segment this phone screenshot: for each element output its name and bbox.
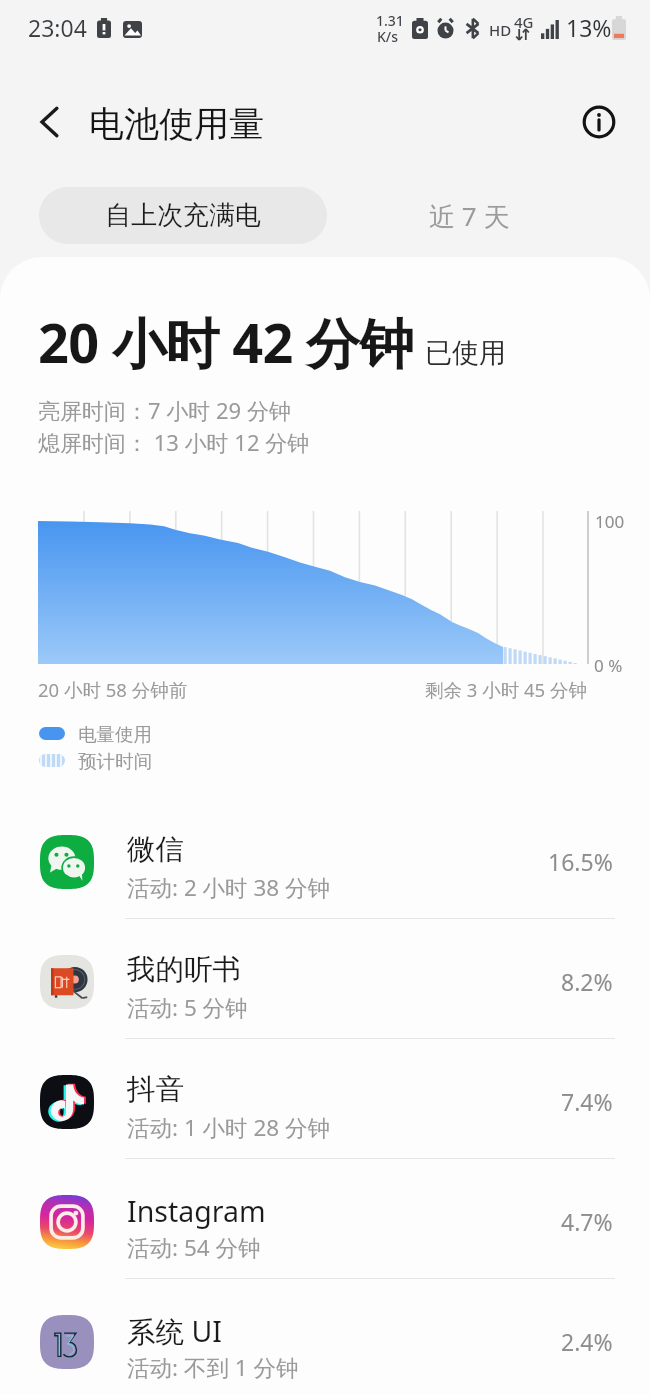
button[interactable]: Information: [578, 101, 620, 143]
button[interactable]: 我的听书: [0, 922, 650, 1042]
staticText: 活动: 2 小时 38 分钟: [127, 872, 331, 903]
button[interactable]: 近 7 天: [330, 187, 608, 244]
staticText: 100: [595, 510, 625, 533]
button[interactable]: 微信: [0, 802, 650, 922]
button[interactable]: Instagram: [0, 1162, 650, 1282]
staticText: 近 7 天: [429, 198, 510, 234]
staticText: 4.7%: [561, 1206, 613, 1237]
staticText: 16.5%: [548, 846, 613, 877]
staticText: 电池使用量: [89, 102, 264, 146]
staticText: 剩余 3 小时 45 分钟: [425, 677, 587, 702]
staticText: 20 小时 58 分钟前: [38, 677, 188, 702]
button[interactable]: 系统 UI: [0, 1282, 650, 1395]
button[interactable]: 抖音: [0, 1042, 650, 1162]
staticText: 0 %: [594, 654, 623, 677]
staticText: 电量使用: [78, 723, 152, 746]
staticText: 系统 UI: [127, 1312, 222, 1351]
staticText: 亮屏时间：7 小时 29 分钟: [38, 395, 291, 425]
staticText: 8.2%: [561, 966, 613, 997]
staticText: 活动: 不到 1 分钟: [127, 1352, 299, 1383]
staticText: 活动: 54 分钟: [127, 1232, 261, 1263]
staticText: 20 小时 42 分钟: [38, 305, 414, 379]
staticText: 7.4%: [561, 1086, 613, 1117]
button[interactable]: 自上次充满电: [39, 187, 327, 244]
staticText: K/s: [377, 27, 399, 46]
staticText: 活动: 5 分钟: [127, 992, 248, 1023]
staticText: 熄屏时间： 13 小时 12 分钟: [38, 427, 310, 457]
staticText: 我的听书: [127, 952, 241, 988]
staticText: 1.31: [376, 11, 404, 30]
staticText: 已使用: [425, 336, 506, 370]
staticText: 抖音: [127, 1072, 184, 1108]
staticText: 4G: [514, 12, 534, 32]
staticText: 预计时间: [78, 750, 152, 773]
staticText: Instagram: [127, 1192, 266, 1231]
staticText: 微信: [127, 832, 184, 868]
staticText: 13%: [566, 12, 612, 43]
staticText: 自上次充满电: [105, 199, 261, 232]
staticText: HD: [489, 20, 512, 40]
staticText: 2.4%: [561, 1326, 613, 1357]
staticText: 23:04: [28, 12, 87, 43]
button[interactable]: Back: [24, 98, 72, 146]
staticText: 活动: 1 小时 28 分钟: [127, 1112, 331, 1143]
